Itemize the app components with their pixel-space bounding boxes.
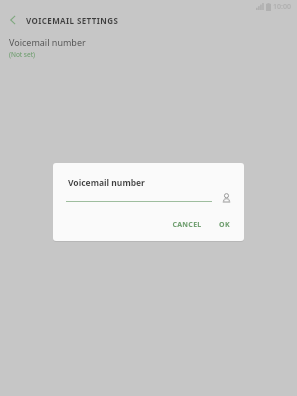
staticText: OK (219, 220, 230, 230)
staticText: CANCEL (172, 220, 202, 230)
staticText: VOICEMAIL SETTINGS (26, 15, 119, 26)
button[interactable]: OK (213, 217, 236, 233)
staticText: Voicemail number (9, 36, 86, 48)
staticText: 10:00 (273, 2, 291, 11)
button[interactable] (66, 193, 212, 202)
button[interactable]: CANCEL (166, 217, 208, 233)
button[interactable]: Select contact (218, 189, 235, 206)
staticText: (Not set) (9, 50, 35, 59)
staticText: Voicemail number (68, 177, 145, 189)
button[interactable]: Voicemail number (9, 35, 189, 60)
button[interactable]: Back (0, 12, 26, 28)
